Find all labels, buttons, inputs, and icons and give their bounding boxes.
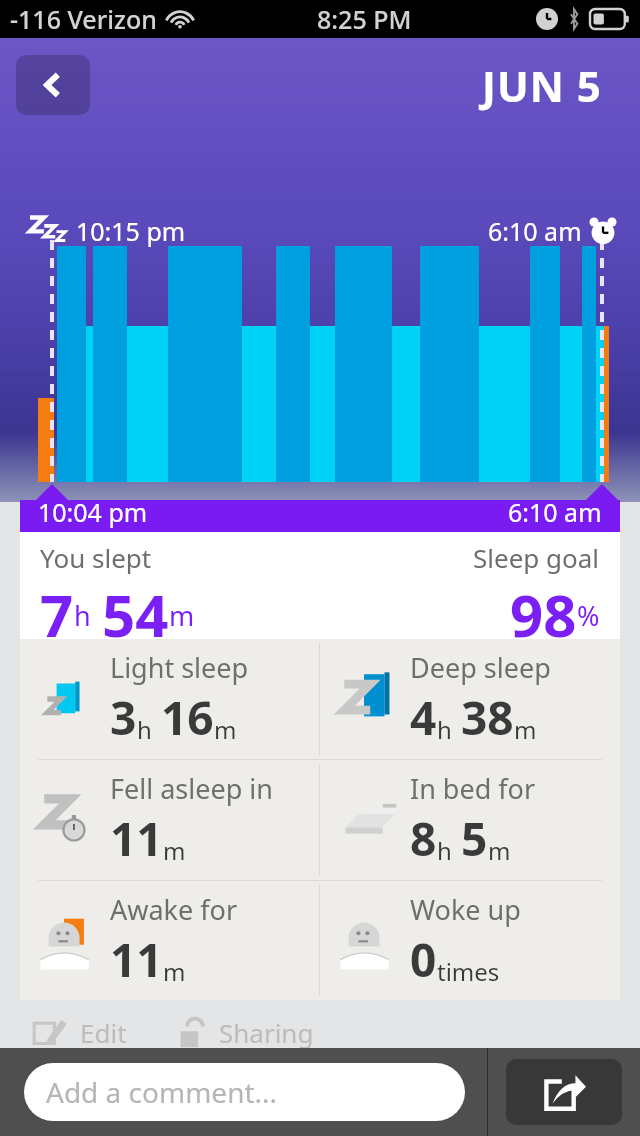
staticText: Awake for [110, 891, 238, 928]
staticText: 11 [110, 807, 163, 870]
staticText: -116 Verizon [10, 2, 157, 36]
staticText: Woke up [410, 891, 521, 928]
button[interactable]: Fell asleep in [20, 760, 319, 880]
staticText: 10:15 pm [76, 214, 186, 248]
staticText: h [437, 834, 452, 867]
staticText: 6:10 am [488, 214, 582, 248]
staticText: Sleep goal [473, 540, 600, 575]
staticText: 11 [110, 928, 163, 991]
staticText: 4 [410, 686, 437, 749]
staticText: In bed for [410, 770, 536, 807]
button[interactable]: Share [506, 1059, 622, 1125]
staticText: % [577, 597, 600, 634]
staticText: m [488, 834, 511, 867]
staticText: Sharing [219, 1015, 314, 1050]
staticText: 54 [102, 575, 169, 639]
staticText: m [163, 955, 186, 988]
button[interactable]: Edit [28, 1010, 127, 1054]
staticText: JUN 5 [482, 57, 602, 114]
staticText: Edit [80, 1015, 127, 1050]
staticText: 16 [161, 686, 214, 749]
staticText: times [437, 955, 500, 988]
staticText: 3 [110, 686, 137, 749]
staticText: h [74, 597, 91, 634]
button[interactable]: Sharing [171, 1012, 314, 1052]
staticText: 10:04 pm [38, 495, 148, 529]
staticText: h [137, 713, 152, 746]
staticText: Add a comment... [46, 1073, 278, 1111]
button[interactable]: Add a comment... [24, 1063, 465, 1121]
staticText: h [437, 713, 452, 746]
button[interactable]: Awake for [20, 881, 319, 1000]
staticText: 98 [510, 575, 577, 639]
button[interactable]: In bed for [320, 760, 620, 880]
staticText: m [214, 713, 237, 746]
staticText: 5 [461, 807, 488, 870]
staticText: You slept [40, 540, 152, 575]
staticText: Light sleep [110, 649, 249, 686]
staticText: m [514, 713, 537, 746]
staticText: 38 [461, 686, 514, 749]
staticText: Deep sleep [410, 649, 551, 686]
staticText: 0 [410, 928, 437, 991]
staticText: Fell asleep in [110, 770, 273, 807]
staticText: m [163, 834, 186, 867]
staticText: 8 [410, 807, 437, 870]
button[interactable]: Woke up [320, 881, 620, 1000]
staticText: m [169, 597, 195, 634]
staticText: 6:10 am [508, 495, 602, 529]
staticText: 8:25 PM [317, 2, 412, 36]
staticText: 7 [40, 575, 74, 639]
button[interactable]: Back [16, 55, 90, 115]
button[interactable]: Light sleep [20, 639, 319, 759]
button[interactable]: Deep sleep [320, 639, 620, 759]
